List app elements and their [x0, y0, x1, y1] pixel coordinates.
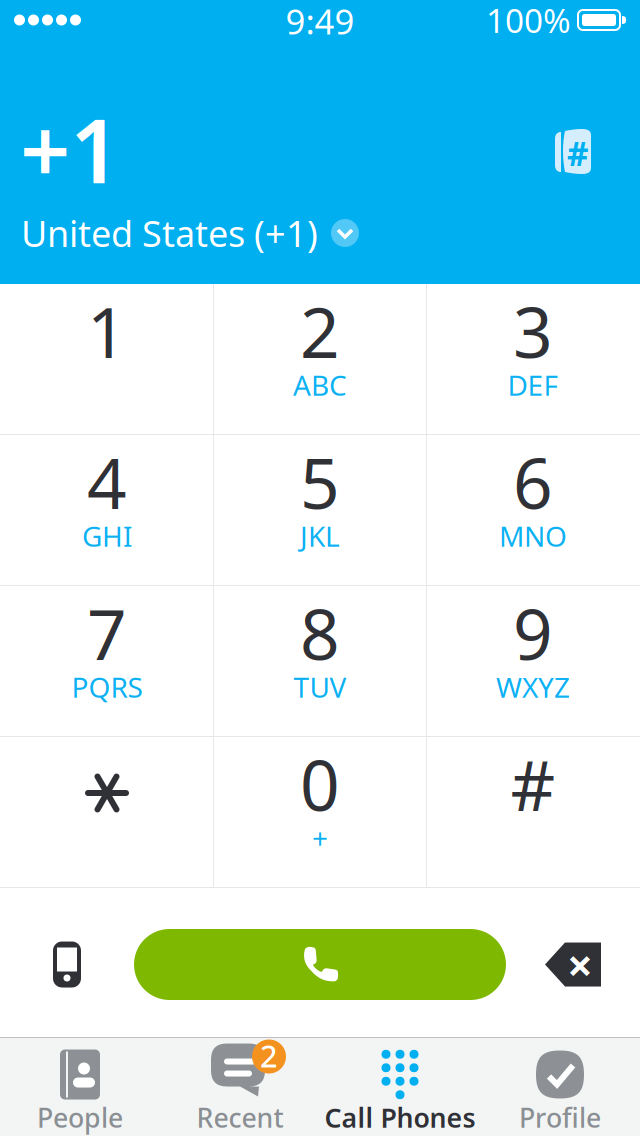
button[interactable]: 8 — [214, 586, 426, 736]
button[interactable]: # — [427, 737, 639, 887]
staticText: ABC — [293, 366, 347, 404]
staticText: WXYZ — [496, 668, 570, 706]
staticText: + — [312, 819, 328, 857]
staticText: Recent — [196, 1100, 283, 1135]
button[interactable]: 7 — [1, 586, 213, 736]
staticText: PQRS — [71, 668, 142, 706]
staticText: 4 — [87, 436, 127, 528]
button[interactable]: Profile — [480, 1038, 640, 1136]
staticText: 9:49 — [285, 0, 354, 44]
staticText: 8 — [300, 587, 340, 679]
button[interactable]: 6 — [427, 435, 639, 585]
staticText: 2 — [260, 1035, 278, 1076]
staticText: Profile — [519, 1100, 601, 1135]
staticText: 3 — [513, 285, 553, 377]
staticText: Call Phones — [324, 1100, 475, 1135]
staticText: JKL — [300, 517, 340, 555]
staticText: 2 — [300, 285, 340, 377]
staticText: 5 — [300, 436, 340, 528]
staticText: 100% — [486, 0, 571, 42]
staticText: GHI — [82, 517, 132, 555]
button[interactable]: 9 — [427, 586, 639, 736]
button[interactable]: 4 — [1, 435, 213, 585]
button[interactable]: 2 — [214, 284, 426, 434]
button[interactable]: Delete — [506, 889, 640, 1039]
button[interactable]: United States (+1) — [21, 213, 441, 253]
button[interactable]: 5 — [214, 435, 426, 585]
staticText: TUV — [293, 668, 346, 706]
button[interactable] — [1, 737, 213, 887]
button[interactable]: 2 — [160, 1038, 320, 1136]
staticText: # — [510, 738, 555, 830]
button[interactable]: People — [0, 1038, 160, 1136]
staticText: People — [37, 1100, 123, 1135]
button[interactable]: Call from mobile — [0, 889, 134, 1039]
staticText: DEF — [507, 366, 558, 404]
staticText: 6 — [513, 436, 553, 528]
staticText: 0 — [300, 738, 340, 830]
button[interactable]: 3 — [427, 284, 639, 434]
button[interactable]: Call — [134, 889, 506, 1039]
staticText: # — [567, 131, 589, 175]
staticText: 9 — [513, 587, 553, 679]
staticText: MNO — [499, 517, 567, 555]
button[interactable]: 0 — [214, 737, 426, 887]
staticText: 7 — [87, 587, 127, 679]
staticText: +1 — [20, 91, 120, 207]
staticText: × — [567, 934, 593, 995]
staticText: United States (+1) — [21, 209, 318, 257]
button[interactable]: 1 — [1, 284, 213, 434]
button[interactable]: Call Phones — [320, 1038, 480, 1136]
button[interactable]: Contacts — [552, 129, 592, 175]
staticText: 1 — [87, 285, 127, 377]
